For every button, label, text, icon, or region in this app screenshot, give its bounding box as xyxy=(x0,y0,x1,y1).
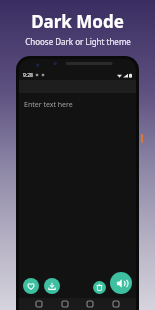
button[interactable]: Delete xyxy=(93,281,106,294)
button[interactable]: Nav 3 xyxy=(110,298,122,310)
button[interactable]: Download xyxy=(44,278,60,294)
button[interactable]: Enter text here xyxy=(24,100,73,110)
button[interactable]: Volume xyxy=(110,272,132,294)
staticText: 9:28 xyxy=(23,72,33,79)
button[interactable]: Nav 0 xyxy=(33,298,45,310)
button[interactable]: Nav 2 xyxy=(84,298,96,310)
staticText: Choose Dark or Light theme xyxy=(25,36,131,47)
button[interactable]: Favorite xyxy=(23,278,39,294)
staticText: Dark Mode xyxy=(31,10,124,33)
button[interactable]: Nav 1 xyxy=(59,298,71,310)
